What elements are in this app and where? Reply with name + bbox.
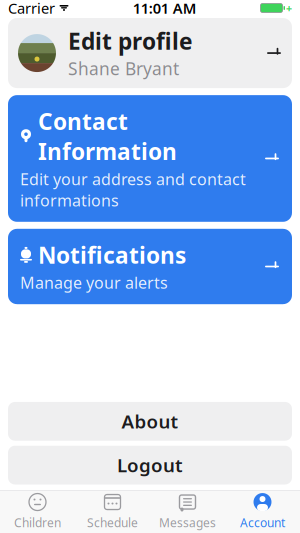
staticText: Edit profile (68, 26, 193, 56)
staticText: Contact Information (38, 106, 177, 166)
staticText: Children (14, 514, 61, 530)
staticText: Edit your address and contact informatio… (20, 168, 246, 211)
button[interactable]: Messages (150, 492, 225, 533)
button[interactable]: Notifications (8, 229, 292, 304)
button[interactable]: About (8, 402, 292, 441)
staticText: Logout (117, 453, 183, 477)
button[interactable]: Contact Information (8, 95, 292, 222)
button[interactable]: Edit profile (8, 18, 292, 88)
staticText: About (121, 409, 178, 434)
button[interactable]: Logout (8, 446, 292, 484)
staticText: Shane Bryant (68, 57, 179, 80)
staticText: Schedule (87, 514, 138, 530)
staticText: + (286, 1, 292, 15)
staticText: Messages (159, 514, 216, 530)
staticText: Account (240, 514, 285, 530)
button[interactable]: Schedule (75, 492, 150, 533)
staticText: Notifications (38, 240, 186, 270)
button[interactable]: Children (0, 492, 75, 533)
staticText: Carrier (8, 0, 55, 18)
button[interactable]: Account (225, 492, 300, 533)
staticText: 11:01 AM (133, 0, 197, 18)
staticText: Manage your alerts (20, 272, 168, 293)
